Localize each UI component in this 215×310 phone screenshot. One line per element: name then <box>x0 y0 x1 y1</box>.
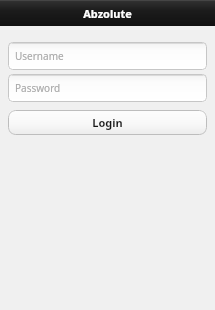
staticText: Login <box>92 115 123 130</box>
button[interactable]: Username <box>8 42 207 70</box>
staticText: Password <box>15 81 61 95</box>
staticText: Username <box>15 49 64 63</box>
staticText: Abzolute <box>83 6 132 21</box>
button[interactable]: Password <box>8 74 207 102</box>
button[interactable]: Login <box>8 110 207 135</box>
